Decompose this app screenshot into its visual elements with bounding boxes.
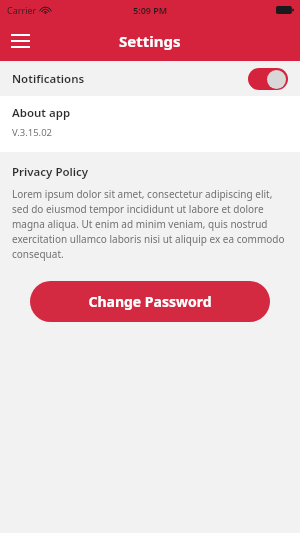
button[interactable]: Notifications (0, 61, 300, 96)
staticText: Change Password (88, 292, 212, 311)
staticText: Notifications (12, 71, 85, 87)
staticText: 5:09 PM (133, 4, 168, 16)
button[interactable]: Menu (4, 25, 36, 57)
staticText: Privacy Policy (12, 164, 89, 180)
button[interactable]: About app (0, 96, 300, 152)
button[interactable]: Notifications toggle, on (248, 68, 288, 90)
staticText: Lorem ipsum dolor sit amet, consectetur … (12, 187, 290, 261)
button[interactable]: Change Password (30, 281, 270, 322)
staticText: About app (12, 105, 71, 121)
staticText: Carrier (7, 4, 37, 16)
staticText: Settings (119, 31, 181, 51)
staticText: V.3.15.02 (12, 126, 53, 139)
